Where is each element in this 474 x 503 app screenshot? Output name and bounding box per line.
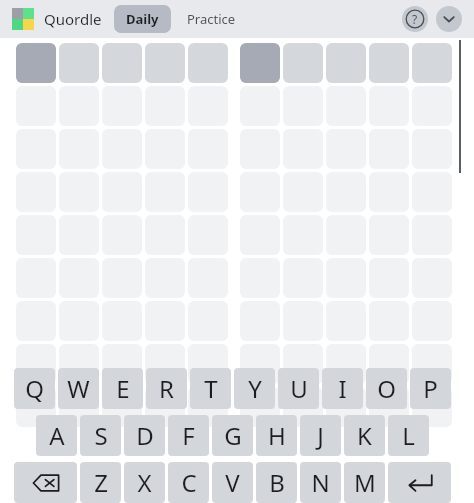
button[interactable]: Letter tile bbox=[326, 43, 366, 83]
button[interactable]: Letter tile bbox=[240, 387, 280, 427]
button[interactable]: Letter tile bbox=[59, 43, 99, 83]
button[interactable]: Letter tile bbox=[283, 43, 323, 83]
button[interactable]: Letter tile bbox=[240, 344, 280, 384]
button[interactable]: M bbox=[344, 462, 385, 503]
button[interactable]: F bbox=[168, 415, 209, 456]
button[interactable]: Letter tile bbox=[16, 344, 56, 384]
button[interactable]: Letter tile bbox=[412, 43, 452, 83]
button[interactable]: R bbox=[146, 368, 187, 409]
button[interactable]: J bbox=[300, 415, 341, 456]
button[interactable]: Backspace bbox=[14, 462, 77, 503]
button[interactable]: Letter tile bbox=[240, 43, 280, 83]
button[interactable]: Letter tile bbox=[412, 387, 452, 427]
button[interactable]: Letter tile bbox=[145, 344, 185, 384]
button[interactable]: L bbox=[388, 415, 429, 456]
button[interactable]: Z bbox=[80, 462, 121, 503]
button[interactable]: Letter tile bbox=[145, 43, 185, 83]
button[interactable]: O bbox=[366, 368, 407, 409]
button[interactable]: Help bbox=[402, 6, 428, 32]
button[interactable]: Letter tile bbox=[283, 344, 323, 384]
button[interactable]: Letter tile bbox=[188, 387, 228, 427]
button[interactable]: H bbox=[256, 415, 297, 456]
button[interactable]: Letter tile bbox=[102, 43, 142, 83]
button[interactable]: W bbox=[58, 368, 99, 409]
button[interactable]: B bbox=[256, 462, 297, 503]
button[interactable]: Letter tile bbox=[145, 387, 185, 427]
button[interactable]: Letter tile bbox=[369, 387, 409, 427]
button[interactable]: S bbox=[80, 415, 121, 456]
button[interactable]: Letter tile bbox=[188, 43, 228, 83]
button[interactable]: D bbox=[124, 415, 165, 456]
button[interactable]: V bbox=[212, 462, 253, 503]
button[interactable]: I bbox=[322, 368, 363, 409]
button[interactable]: Daily bbox=[114, 5, 171, 33]
button[interactable]: X bbox=[124, 462, 165, 503]
button[interactable]: A bbox=[36, 415, 77, 456]
button[interactable]: Letter tile bbox=[326, 344, 366, 384]
button[interactable]: Practice bbox=[179, 5, 244, 33]
button[interactable]: Y bbox=[234, 368, 275, 409]
button[interactable]: Letter tile bbox=[283, 387, 323, 427]
button[interactable]: U bbox=[278, 368, 319, 409]
button[interactable]: Enter bbox=[388, 462, 451, 503]
button[interactable]: More options bbox=[436, 6, 462, 32]
button[interactable]: C bbox=[168, 462, 209, 503]
button[interactable]: Letter tile bbox=[102, 387, 142, 427]
button[interactable]: Letter tile bbox=[102, 344, 142, 384]
button[interactable]: E bbox=[102, 368, 143, 409]
button[interactable]: Letter tile bbox=[326, 387, 366, 427]
button[interactable]: Letter tile bbox=[16, 43, 56, 83]
button[interactable]: Letter tile bbox=[59, 387, 99, 427]
